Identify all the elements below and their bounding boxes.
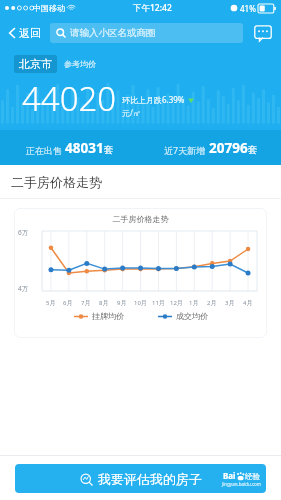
staticText: Bai [223, 470, 236, 481]
staticText: jingyan.baidu.com [222, 481, 261, 487]
staticText: 12月 [170, 299, 183, 307]
staticText: 下午12:42 [133, 2, 172, 14]
button[interactable]: 近7天新增 [140, 139, 281, 157]
staticText: 正在出售 [26, 145, 62, 156]
staticText: 6月 [63, 299, 73, 307]
staticText: 7月 [81, 299, 91, 307]
staticText: 8月 [99, 299, 109, 307]
staticText: 3月 [225, 299, 235, 307]
staticText: 经验 [245, 472, 260, 481]
staticText: 10月 [134, 299, 147, 307]
button[interactable]: 请输入小区名或商圈 [50, 23, 243, 43]
staticText: 11月 [152, 299, 165, 307]
staticText: 4万 [18, 284, 29, 293]
staticText: 2月 [207, 299, 217, 307]
staticText: 元/㎡ [122, 107, 141, 118]
staticText: 1月 [189, 299, 199, 307]
button[interactable]: 我要评估我的房子 [15, 464, 266, 493]
staticText: 套 [104, 144, 114, 156]
button[interactable]: 返回 [6, 22, 44, 44]
staticText: 41% [240, 3, 256, 14]
staticText: 4月 [243, 299, 253, 307]
staticText: 请输入小区名或商圈 [70, 27, 156, 39]
button[interactable]: 二手房价格走势 [14, 208, 267, 338]
staticText: 挂牌均价 [92, 311, 124, 321]
staticText: 20796 [209, 139, 248, 157]
staticText: 套 [248, 144, 258, 156]
staticText: 参考均价 [64, 59, 96, 69]
staticText: 9月 [117, 299, 127, 307]
staticText: 返回 [19, 26, 41, 40]
staticText: 环比上月跌6.39% [122, 94, 185, 105]
staticText: 44020 [22, 76, 117, 121]
staticText: 6万 [18, 228, 29, 237]
staticText: 二手房价格走势 [11, 174, 102, 190]
staticText: 近7天新增 [164, 144, 206, 156]
button[interactable]: 正在出售 [0, 139, 140, 157]
staticText: 北京市 [19, 57, 52, 71]
button[interactable]: More options [251, 21, 275, 45]
staticText: 二手房价格走势 [14, 214, 267, 224]
staticText: 5月 [46, 299, 56, 307]
staticText: 48031 [65, 139, 104, 157]
staticText: 成交均价 [176, 311, 208, 321]
staticText: 我要评估我的房子 [98, 471, 202, 487]
staticText: 中国移动 [33, 3, 65, 13]
